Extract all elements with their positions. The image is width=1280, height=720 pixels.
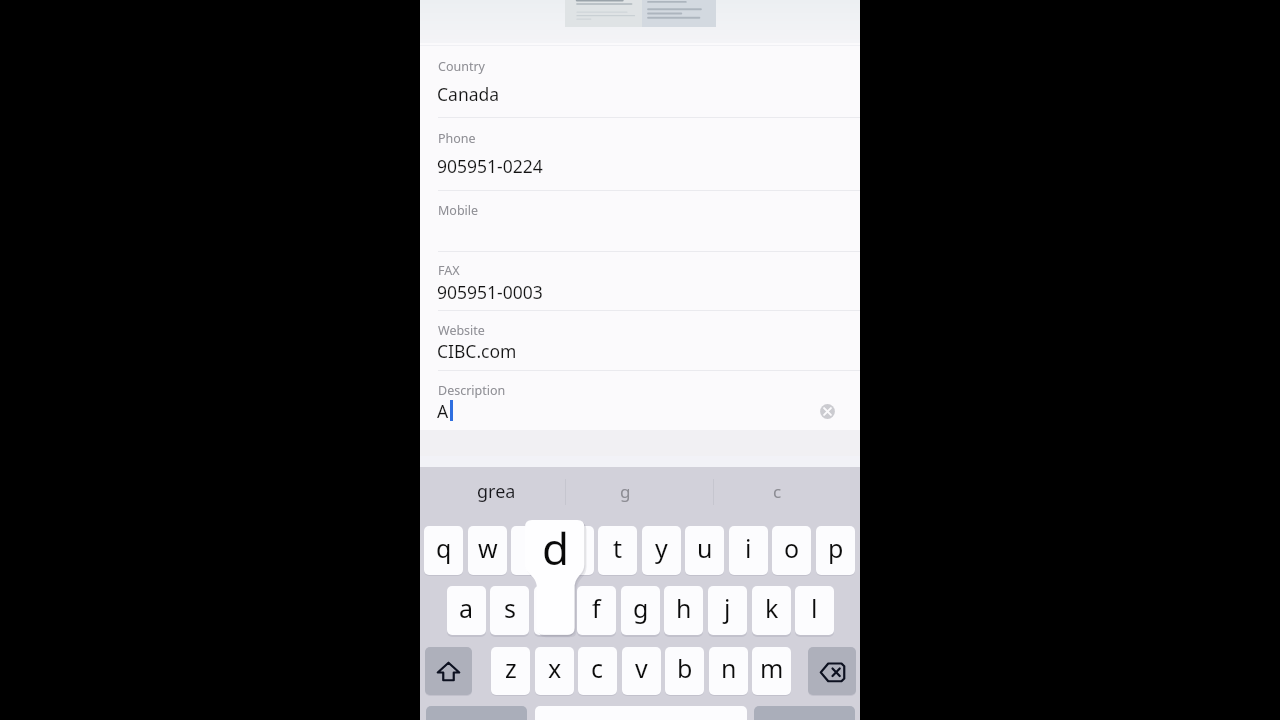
staticText: f: [592, 591, 601, 625]
staticText: o: [784, 531, 800, 565]
staticText: v: [635, 651, 648, 685]
button[interactable]: v: [622, 647, 661, 695]
button[interactable]: k: [752, 586, 791, 635]
button[interactable]: g: [621, 586, 660, 635]
staticText: u: [697, 531, 713, 565]
button[interactable]: Description: [420, 370, 860, 428]
staticText: g: [620, 480, 631, 503]
button[interactable]: m: [752, 647, 791, 695]
staticText: t: [613, 531, 623, 565]
button[interactable]: Website: [420, 310, 860, 370]
staticText: c: [773, 480, 782, 503]
staticText: w: [478, 531, 498, 565]
button[interactable]: h: [664, 586, 703, 635]
button[interactable]: l: [795, 586, 834, 635]
staticText: Phone: [438, 130, 476, 147]
staticText: 905951-0003: [437, 280, 543, 304]
button[interactable]: s: [490, 586, 529, 635]
button[interactable]: [555, 526, 594, 575]
staticText: x: [548, 651, 562, 685]
staticText: a: [459, 591, 474, 625]
button[interactable]: b: [665, 647, 704, 695]
button[interactable]: t: [598, 526, 637, 575]
staticText: FAX: [438, 262, 460, 279]
staticText: b: [677, 651, 693, 685]
button[interactable]: Country: [420, 43, 860, 117]
staticText: l: [811, 591, 818, 625]
button[interactable]: Numbers: [426, 706, 527, 720]
button[interactable]: FAX: [420, 251, 860, 311]
button[interactable]: p: [816, 526, 855, 575]
staticText: d: [542, 518, 570, 578]
button[interactable]: c: [729, 467, 825, 516]
other: Key d pressed: [525, 520, 588, 639]
staticText: q: [436, 531, 452, 565]
button[interactable]: Return: [754, 706, 855, 720]
staticText: CIBC.com: [437, 339, 517, 363]
staticText: Country: [438, 58, 485, 75]
staticText: 905951-0224: [437, 154, 543, 178]
staticText: g: [633, 591, 649, 625]
staticText: Canada: [437, 82, 500, 106]
staticText: Mobile: [438, 202, 479, 219]
staticText: c: [591, 651, 604, 685]
staticText: Website: [438, 322, 485, 339]
staticText: i: [745, 531, 752, 565]
button[interactable]: a: [447, 586, 486, 635]
button[interactable]: Shift: [425, 647, 472, 695]
button[interactable]: [534, 586, 573, 635]
button[interactable]: o: [772, 526, 811, 575]
staticText: n: [721, 651, 737, 685]
button[interactable]: grea: [448, 467, 544, 516]
button[interactable]: Clear text: [814, 398, 841, 425]
staticText: k: [765, 591, 779, 625]
button[interactable]: n: [709, 647, 748, 695]
button[interactable]: Delete: [808, 647, 856, 695]
button[interactable]: w: [468, 526, 507, 575]
staticText: m: [760, 651, 784, 685]
staticText: h: [676, 591, 692, 625]
button[interactable]: j: [708, 586, 747, 635]
staticText: A: [437, 399, 449, 423]
button[interactable]: x: [535, 647, 574, 695]
button[interactable]: [511, 526, 550, 575]
staticText: p: [828, 531, 844, 565]
staticText: z: [505, 651, 517, 685]
staticText: j: [724, 591, 731, 625]
button[interactable]: g: [577, 467, 673, 516]
button[interactable]: i: [729, 526, 768, 575]
staticText: grea: [477, 479, 516, 504]
button[interactable]: z: [491, 647, 530, 695]
button[interactable]: y: [642, 526, 681, 575]
staticText: Description: [438, 382, 506, 399]
button[interactable]: u: [685, 526, 724, 575]
button[interactable]: c: [578, 647, 617, 695]
button[interactable]: Mobile: [420, 190, 860, 251]
button[interactable]: q: [424, 526, 463, 575]
staticText: y: [655, 531, 668, 565]
staticText: s: [504, 591, 516, 625]
button[interactable]: f: [577, 586, 616, 635]
button[interactable]: Phone: [420, 117, 860, 191]
